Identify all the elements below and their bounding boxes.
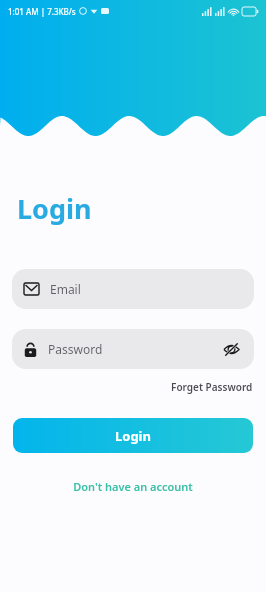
button[interactable]: Password [12, 329, 254, 369]
button[interactable]: Email [12, 269, 254, 309]
button[interactable]: Forget Password [158, 378, 266, 396]
staticText: Password [48, 341, 103, 357]
staticText: Login [17, 190, 92, 227]
button[interactable]: Login [13, 418, 253, 453]
staticText: Email [50, 281, 81, 297]
staticText: Login [115, 427, 151, 445]
staticText: 1:01 AM | 7.3KB/s [8, 6, 76, 17]
button[interactable]: Don't have an account [63, 476, 203, 497]
button[interactable]: Show password [220, 338, 242, 360]
